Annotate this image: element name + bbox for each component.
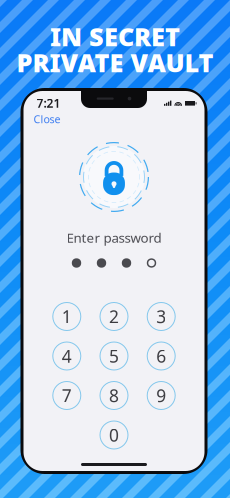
button[interactable]: 5 bbox=[99, 341, 128, 370]
staticText: 9 bbox=[156, 384, 166, 407]
staticText: Close bbox=[33, 112, 60, 126]
staticText: Enter password bbox=[66, 229, 161, 246]
staticText: 6 bbox=[156, 344, 166, 367]
button[interactable]: 3 bbox=[147, 302, 176, 331]
staticText: IN SECRET bbox=[50, 20, 180, 53]
staticText: 0 bbox=[109, 423, 119, 446]
staticText: 7:21 bbox=[36, 95, 60, 111]
staticText: 2 bbox=[109, 305, 119, 328]
button[interactable]: 6 bbox=[147, 341, 176, 370]
button[interactable]: 0 bbox=[99, 420, 128, 449]
staticText: 3 bbox=[156, 305, 166, 328]
staticText: 5 bbox=[109, 344, 119, 367]
button[interactable]: Close bbox=[30, 110, 63, 128]
staticText: 7 bbox=[62, 384, 72, 407]
staticText: PRIVATE VAULT bbox=[16, 46, 213, 79]
button[interactable]: 8 bbox=[99, 381, 128, 410]
button[interactable]: 1 bbox=[52, 302, 81, 331]
staticText: 8 bbox=[109, 384, 119, 407]
button[interactable]: 9 bbox=[147, 381, 176, 410]
staticText: 1 bbox=[62, 305, 72, 328]
button[interactable]: 4 bbox=[52, 341, 81, 370]
button[interactable]: 7 bbox=[52, 381, 81, 410]
staticText: 4 bbox=[62, 344, 72, 367]
button[interactable]: 2 bbox=[99, 302, 128, 331]
